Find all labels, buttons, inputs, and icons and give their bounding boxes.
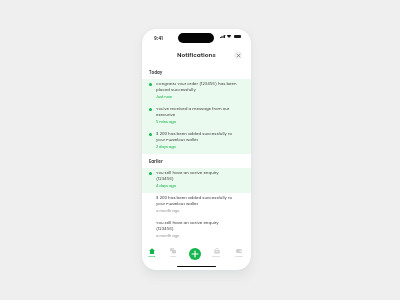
staticText: You've received a message from our execu… <box>156 106 230 118</box>
staticText: Earlier <box>149 159 163 165</box>
staticText: Home <box>148 255 156 258</box>
staticText: 5 mins ago <box>156 120 177 125</box>
staticText: Orders <box>212 255 221 258</box>
staticText: Chat <box>170 255 176 258</box>
button[interactable]: Congrats! Your order (123456) has been p… <box>142 79 251 104</box>
button[interactable]: Close <box>234 51 242 59</box>
staticText: a month ago <box>156 234 180 239</box>
staticText: Wallet <box>235 255 243 258</box>
button[interactable]: $ 200 has been added successfully to you… <box>142 129 251 154</box>
button[interactable]: $ 200 has been added successfully to you… <box>142 193 251 218</box>
staticText: You still have an active enquiry (123456… <box>156 170 219 182</box>
staticText: 2 days ago <box>156 145 176 150</box>
button[interactable]: You still have an active enquiry (123456… <box>142 168 251 193</box>
staticText: 9:41 <box>154 35 163 41</box>
staticText: Notifications <box>177 51 216 59</box>
staticText: $ 200 has been added successfully to you… <box>156 195 232 207</box>
button[interactable]: Home <box>142 248 161 258</box>
staticText: $ 200 has been added successfully to you… <box>156 131 232 143</box>
staticText: Just now <box>156 95 172 100</box>
button[interactable]: You've received a message from our execu… <box>142 104 251 129</box>
staticText: Today <box>149 70 163 76</box>
staticText: 4 days ago <box>156 184 177 189</box>
staticText: You still have an active enquiry (123456… <box>156 220 219 232</box>
button[interactable]: You still have an active enquiry (123456… <box>142 218 251 243</box>
button[interactable]: Orders <box>207 248 226 258</box>
button[interactable]: Add <box>189 248 201 260</box>
button[interactable]: Chat <box>163 248 182 258</box>
staticText: a month ago <box>156 209 180 214</box>
staticText: Congrats! Your order (123456) has been p… <box>156 81 237 93</box>
button[interactable]: Wallet <box>229 248 248 258</box>
